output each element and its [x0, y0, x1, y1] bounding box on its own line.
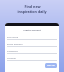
staticText: Email address — [7, 42, 23, 45]
staticText: Create account — [7, 28, 57, 31]
staticText: Find new — [24, 4, 41, 9]
staticText: inspiration daily — [17, 9, 47, 14]
staticText: Sign up — [47, 64, 55, 67]
staticText: Confirm — [7, 56, 17, 59]
staticText: Password — [7, 49, 18, 52]
button[interactable]: Sign up — [45, 63, 57, 68]
staticText: Full name — [7, 35, 18, 38]
